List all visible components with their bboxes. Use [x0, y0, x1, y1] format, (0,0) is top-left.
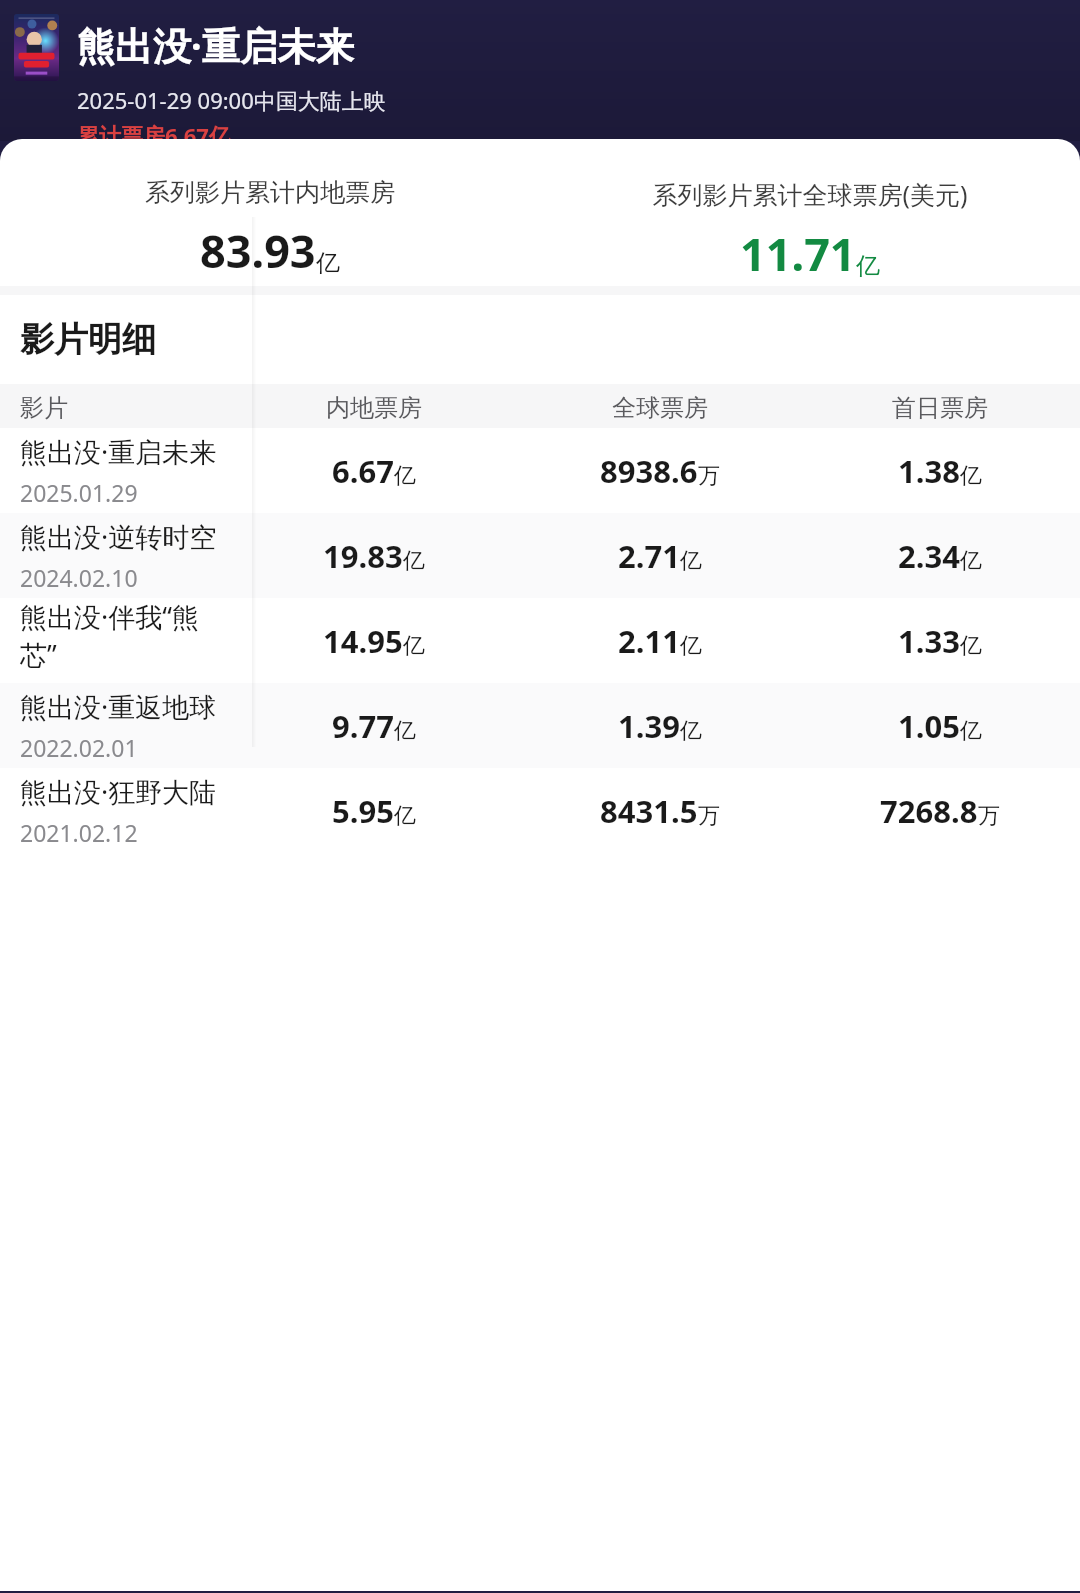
- staticText: 万: [978, 802, 1000, 830]
- staticText: 7268.8: [880, 790, 978, 832]
- staticText: 影片: [20, 393, 68, 423]
- staticText: 熊出没·重启未来: [77, 19, 354, 71]
- staticText: 亿: [680, 717, 702, 745]
- staticText: 1.33: [898, 620, 960, 662]
- staticText: 1.39: [618, 705, 680, 747]
- button[interactable]: 系列影片累计内地票房: [0, 139, 540, 286]
- staticText: 亿: [960, 547, 982, 575]
- staticText: 熊出没·狂野大陆: [20, 773, 217, 810]
- staticText: 6.67: [332, 450, 394, 492]
- staticText: 首日票房: [892, 393, 988, 423]
- staticText: 1.05: [898, 705, 960, 747]
- staticText: 亿: [403, 632, 425, 660]
- staticText: 亿: [960, 462, 982, 490]
- staticText: 亿: [680, 547, 702, 575]
- staticText: 全球票房: [612, 393, 708, 423]
- staticText: 83.93: [200, 220, 316, 281]
- staticText: 2.71: [618, 535, 680, 577]
- button[interactable]: 影片海报: [14, 14, 59, 81]
- button[interactable]: 系列影片累计全球票房(美元): [540, 139, 1080, 286]
- staticText: 影片明细: [20, 318, 156, 361]
- staticText: 熊出没·逆转时空: [20, 518, 217, 555]
- staticText: 亿: [856, 251, 880, 281]
- staticText: 亿: [960, 717, 982, 745]
- button[interactable]: 熊出没·伴我“熊芯”: [0, 598, 1080, 683]
- staticText: 2.11: [618, 620, 680, 662]
- staticText: 2022.02.01: [20, 732, 138, 763]
- staticText: 亿: [394, 462, 416, 490]
- staticText: 14.95: [323, 620, 403, 662]
- staticText: 2024.02.10: [20, 562, 138, 593]
- staticText: 系列影片累计内地票房: [145, 177, 395, 208]
- staticText: 8938.6: [600, 450, 698, 492]
- staticText: 2021.02.12: [20, 817, 138, 848]
- button[interactable]: 熊出没·重返地球: [0, 683, 1080, 768]
- staticText: 8431.5: [600, 790, 698, 832]
- staticText: 熊出没·伴我“熊芯”: [20, 598, 227, 673]
- staticText: 累计票房6.67亿: [77, 120, 231, 141]
- staticText: 亿: [394, 802, 416, 830]
- button[interactable]: 影片海报: [0, 0, 1080, 141]
- button[interactable]: 熊出没·逆转时空: [0, 513, 1080, 598]
- button[interactable]: 熊出没·重启未来: [0, 428, 1080, 513]
- staticText: 2.34: [898, 535, 960, 577]
- staticText: 万: [698, 462, 720, 490]
- staticText: 万: [698, 802, 720, 830]
- staticText: 亿: [680, 632, 702, 660]
- staticText: 亿: [394, 717, 416, 745]
- staticText: 熊出没·重启未来: [20, 433, 217, 470]
- staticText: 亿: [960, 632, 982, 660]
- staticText: 11.71: [740, 223, 856, 284]
- staticText: 亿: [316, 248, 340, 278]
- staticText: 2025-01-29 09:00中国大陆上映: [77, 85, 386, 115]
- staticText: 系列影片累计全球票房(美元): [652, 177, 968, 211]
- staticText: 熊出没·重返地球: [20, 688, 217, 725]
- staticText: 2025.01.29: [20, 477, 138, 508]
- staticText: 内地票房: [326, 393, 422, 423]
- staticText: 9.77: [332, 705, 394, 747]
- staticText: 1.38: [898, 450, 960, 492]
- staticText: 亿: [403, 547, 425, 575]
- staticText: 5.95: [332, 790, 394, 832]
- button[interactable]: 熊出没·狂野大陆: [0, 768, 1080, 853]
- staticText: 19.83: [323, 535, 403, 577]
